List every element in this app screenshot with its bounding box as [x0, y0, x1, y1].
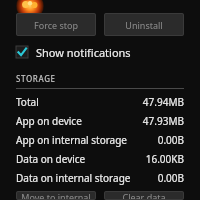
staticText: Force stop — [34, 19, 78, 31]
staticText: Show notifications — [36, 45, 131, 60]
staticText: 47.93MB — [142, 114, 184, 128]
staticText: Data on device — [16, 152, 86, 166]
staticText: STORAGE — [16, 73, 56, 84]
button[interactable]: Total — [16, 92, 184, 111]
button[interactable]: Show notifications — [16, 42, 200, 62]
button[interactable]: Data on device — [16, 149, 184, 168]
staticText: Clear data — [122, 191, 166, 200]
button[interactable]: Force stop — [16, 13, 96, 36]
staticText: 16.00KB — [145, 152, 184, 166]
staticText: App on device — [16, 114, 82, 128]
button[interactable]: Uninstall — [104, 13, 184, 36]
staticText: Data on internal storage — [16, 171, 131, 185]
staticText: 0.00B — [157, 133, 184, 147]
other: App icon — [19, 0, 41, 9]
button[interactable]: Move to internal — [16, 191, 96, 200]
staticText: Total — [16, 95, 39, 109]
staticText: Uninstall — [125, 19, 163, 31]
staticText: Move to internal — [21, 191, 91, 200]
staticText: 0.00B — [157, 171, 184, 185]
staticText: App on internal storage — [16, 133, 128, 147]
button[interactable]: App on device — [16, 111, 184, 130]
staticText: 47.94MB — [142, 95, 184, 109]
button[interactable]: Clear data — [104, 191, 184, 200]
button[interactable]: App on internal storage — [16, 130, 184, 149]
button[interactable]: Data on internal storage — [16, 168, 184, 187]
